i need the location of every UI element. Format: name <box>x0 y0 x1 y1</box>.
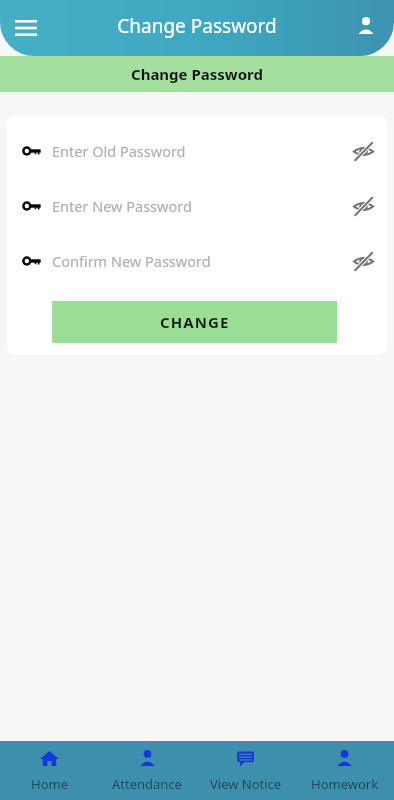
staticText: Change Password <box>131 64 263 84</box>
staticText: Homework <box>311 775 379 793</box>
button[interactable]: Confirm New Password <box>7 247 387 275</box>
staticText: Enter Old Password <box>52 141 186 161</box>
button[interactable]: Homework <box>295 742 394 799</box>
staticText: Home <box>31 775 68 793</box>
staticText: Change Password <box>117 13 277 39</box>
button[interactable]: Show password <box>346 192 380 220</box>
button[interactable]: Show password <box>346 137 380 165</box>
button[interactable]: Attendance <box>98 742 196 799</box>
button[interactable]: Enter New Password <box>7 192 387 220</box>
button[interactable]: Open navigation menu <box>6 8 46 48</box>
button[interactable]: Enter Old Password <box>7 137 387 165</box>
button[interactable]: Home <box>0 742 98 799</box>
button[interactable]: View Notice <box>196 742 295 799</box>
staticText: View Notice <box>210 775 282 793</box>
button[interactable]: Profile <box>346 6 386 46</box>
staticText: Confirm New Password <box>52 251 211 271</box>
staticText: Enter New Password <box>52 196 192 216</box>
button[interactable]: Show password <box>346 247 380 275</box>
staticText: Attendance <box>112 775 182 793</box>
button[interactable]: CHANGE <box>52 301 337 343</box>
staticText: CHANGE <box>160 312 230 332</box>
